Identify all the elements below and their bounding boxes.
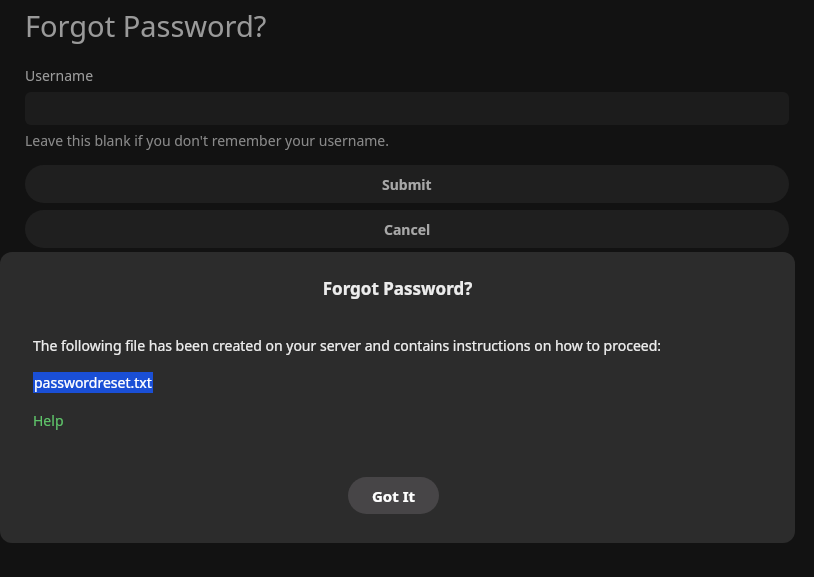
staticText: Forgot Password?	[0, 277, 795, 300]
staticText: Cancel	[384, 220, 431, 239]
staticText: Forgot Password?	[25, 6, 267, 45]
button[interactable]: Got It	[348, 477, 439, 514]
staticText: passwordreset.txt	[34, 373, 152, 392]
staticText: Help	[33, 411, 64, 430]
button[interactable]: passwordreset.txt	[33, 372, 153, 393]
staticText: Username	[25, 66, 94, 85]
staticText: Got It	[372, 486, 415, 506]
staticText: Leave this blank if you don't remember y…	[25, 131, 390, 150]
staticText: Submit	[382, 175, 432, 194]
staticText: The following file has been created on y…	[33, 336, 662, 355]
button[interactable]: Help	[33, 411, 64, 430]
button[interactable]: Submit	[25, 165, 789, 203]
button[interactable]: Cancel	[25, 210, 789, 248]
